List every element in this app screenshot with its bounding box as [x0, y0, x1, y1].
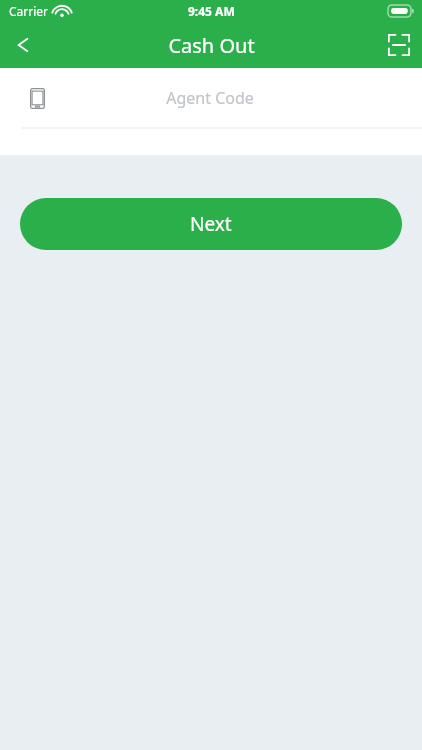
- button[interactable]: Agent Code: [0, 68, 422, 128]
- staticText: Next: [190, 211, 232, 237]
- staticText: Agent Code: [166, 87, 254, 109]
- button[interactable]: Back: [0, 22, 46, 68]
- staticText: 9:45 AM: [188, 3, 235, 19]
- staticText: Carrier: [9, 3, 49, 19]
- button[interactable]: Scan QR code: [376, 22, 422, 68]
- staticText: Cash Out: [168, 32, 255, 59]
- button[interactable]: Next: [20, 198, 402, 250]
